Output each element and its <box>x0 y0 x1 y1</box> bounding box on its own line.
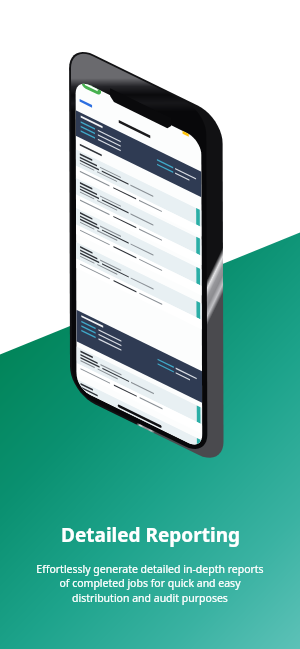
staticText: Detailed Reporting <box>61 522 240 548</box>
staticText: Effortlessly generate detailed in-depth … <box>36 562 264 605</box>
